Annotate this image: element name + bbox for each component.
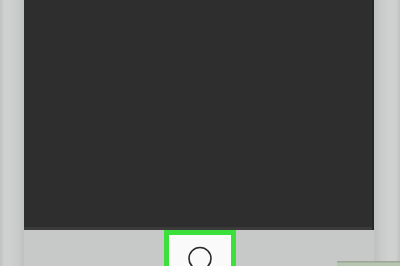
button[interactable]: Home button bbox=[0, 0, 400, 266]
